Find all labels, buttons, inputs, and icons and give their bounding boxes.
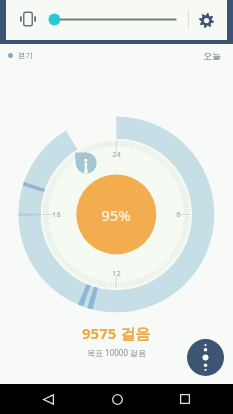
button[interactable]: Back [27, 384, 69, 414]
staticText: 9575 걸음 [82, 323, 151, 343]
staticText: 18 [52, 209, 61, 219]
staticText: 24 [112, 149, 121, 159]
button[interactable]: Brightness [44, 7, 184, 32]
staticText: 6 [176, 209, 181, 219]
staticText: 목표 10000 걸음 [87, 347, 147, 358]
staticText: 오늘 [203, 50, 221, 61]
button[interactable]: More options [187, 339, 224, 376]
button[interactable]: Home [96, 384, 138, 414]
staticText: 12 [112, 268, 121, 278]
button[interactable]: Ringer mode [15, 6, 41, 32]
staticText: 95% [101, 205, 131, 225]
button[interactable]: Settings [193, 7, 219, 33]
staticText: 걷기 [18, 51, 33, 60]
button[interactable]: Recents [164, 384, 206, 414]
